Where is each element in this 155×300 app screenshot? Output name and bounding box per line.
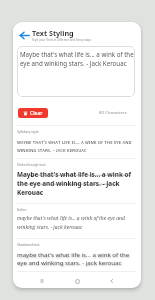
button[interactable]: Back [17, 27, 92, 43]
staticText: Maybe that's what life is... a wink of t… [20, 50, 134, 68]
staticText: Text Styling [32, 28, 74, 38]
button[interactable]: Clear [18, 108, 48, 118]
button[interactable]: ᴍᴀʏʙᴇ ᴛʜᴀᴛ'ꜱ ᴡʜᴀᴛ ʟɪꜰᴇ ɪꜱ... ᴀ ᴡɪɴᴋ ᴏꜰ ᴛ… [17, 138, 136, 154]
staticText: Style your Texts in Different and Fancy … [32, 38, 92, 42]
other: Back [17, 28, 31, 42]
staticText: maybe that's what life is... a wink of t… [17, 250, 136, 266]
button[interactable]: maybe that's what life is... a wink of t… [17, 250, 136, 266]
button[interactable]: Home [71, 275, 83, 287]
staticText: Strike through text: [17, 163, 46, 167]
staticText: 80 Characters [99, 109, 127, 115]
staticText: ᴍᴀʏʙᴇ ᴛʜᴀᴛ'ꜱ ᴡʜᴀᴛ ʟɪꜰᴇ ɪꜱ... ᴀ ᴡɪɴᴋ ᴏꜰ ᴛ… [17, 138, 136, 154]
staticText: Syllabary style: [17, 130, 40, 134]
button[interactable]: Back [106, 275, 118, 287]
button[interactable]: maybe that's what life is... a wink of t… [17, 215, 136, 230]
staticText: Maybe that's what life is... a wink of t… [17, 170, 136, 197]
staticText: Italics: [17, 208, 27, 212]
staticText: Shadowed text: [17, 243, 40, 247]
staticText: Clear [30, 110, 43, 117]
staticText: maybe that's what life is... a wink of t… [17, 215, 136, 230]
button[interactable]: Maybe that's what life is... a wink of t… [17, 46, 135, 97]
button[interactable]: Maybe that's what life is... a wink of t… [17, 170, 136, 197]
button[interactable]: Recents [36, 275, 48, 287]
